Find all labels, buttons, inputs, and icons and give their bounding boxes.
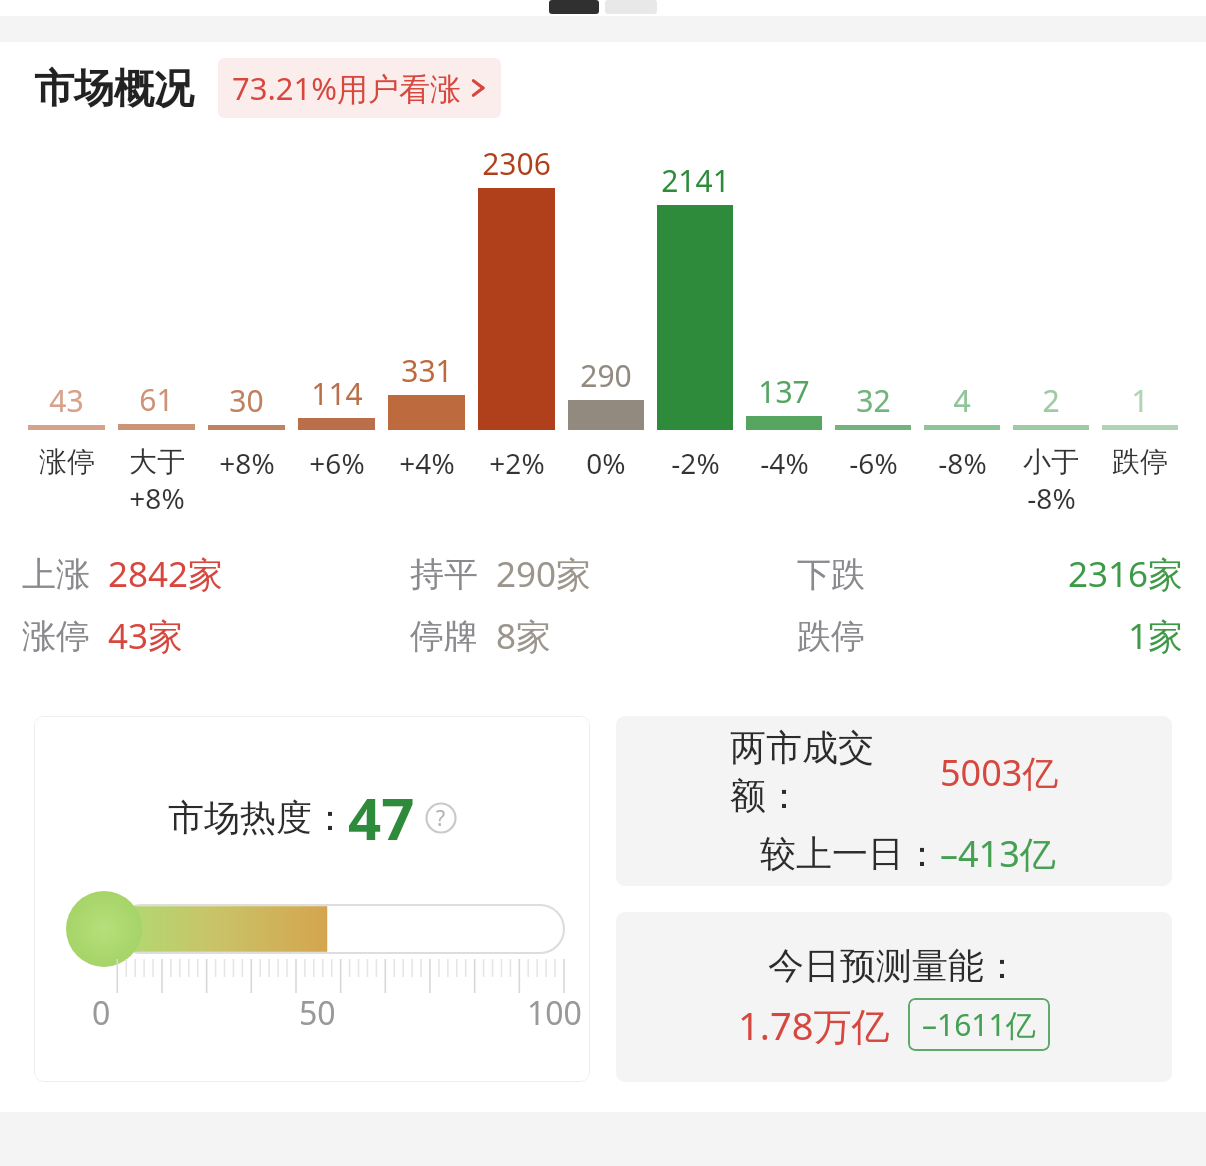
- staticText: 331: [401, 350, 453, 391]
- staticText: –1611亿: [922, 1004, 1036, 1045]
- staticText: 1.78万亿: [738, 999, 890, 1051]
- staticText: 下跌: [797, 553, 865, 596]
- staticText: -2%: [671, 444, 720, 482]
- button[interactable]: 帮助: [425, 802, 457, 834]
- staticText: 涨停: [39, 444, 95, 479]
- button[interactable]: 43: [28, 128, 105, 479]
- staticText: 0%: [586, 444, 626, 482]
- button[interactable]: 30: [208, 128, 285, 482]
- staticText: +8%: [219, 444, 275, 482]
- staticText: 停牌: [410, 615, 478, 658]
- button[interactable]: 114: [298, 128, 375, 482]
- staticText: –413亿: [940, 829, 1056, 878]
- staticText: 今日预测量能：: [768, 943, 1020, 988]
- button[interactable]: 2: [1013, 128, 1089, 517]
- staticText: 61: [139, 379, 174, 420]
- staticText: 上涨: [22, 553, 90, 596]
- staticText: -6%: [849, 444, 898, 482]
- staticText: 两市成交额：: [730, 725, 940, 819]
- staticText: 市场热度：: [168, 795, 348, 840]
- button[interactable]: 290: [568, 128, 644, 482]
- staticText: 47: [348, 778, 415, 857]
- staticText: 2: [1042, 380, 1060, 421]
- button[interactable]: 1: [1102, 128, 1178, 479]
- staticText: +8%: [129, 479, 185, 517]
- staticText: 290家: [496, 550, 592, 598]
- staticText: 持平: [410, 553, 478, 596]
- staticText: 290: [580, 355, 632, 396]
- staticText: +6%: [309, 444, 365, 482]
- button[interactable]: 61: [118, 128, 195, 517]
- staticText: 8家: [496, 612, 552, 660]
- staticText: 大于: [129, 444, 185, 479]
- button[interactable]: 市场热度：: [34, 716, 590, 1082]
- staticText: 0: [92, 991, 111, 1035]
- staticText: +4%: [399, 444, 455, 482]
- button[interactable]: [549, 0, 599, 14]
- staticText: +2%: [489, 444, 545, 482]
- staticText: 跌停: [1112, 444, 1168, 479]
- staticText: 30: [229, 380, 264, 421]
- button[interactable]: 今日预测量能：: [616, 912, 1172, 1082]
- button[interactable]: 137: [746, 128, 822, 482]
- staticText: 137: [758, 371, 810, 412]
- staticText: 43: [49, 380, 84, 421]
- staticText: 43家: [108, 612, 184, 660]
- staticText: -8%: [1027, 479, 1076, 517]
- staticText: 跌停: [797, 615, 865, 658]
- staticText: 4: [953, 380, 971, 421]
- button[interactable]: 2306: [478, 128, 555, 482]
- staticText: 2141: [661, 160, 730, 201]
- staticText: 2306: [482, 143, 551, 184]
- staticText: 50: [299, 991, 336, 1035]
- staticText: 100: [527, 991, 582, 1035]
- staticText: -8%: [938, 444, 987, 482]
- staticText: 114: [311, 373, 363, 414]
- staticText: 1: [1131, 380, 1149, 421]
- staticText: 较上一日：: [760, 831, 940, 876]
- button[interactable]: 2141: [657, 128, 733, 482]
- staticText: 5003亿: [940, 748, 1059, 797]
- staticText: 2842家: [108, 550, 224, 598]
- staticText: 市场概况: [34, 63, 194, 113]
- staticText: 小于: [1023, 444, 1079, 479]
- staticText: 涨停: [22, 615, 90, 658]
- button[interactable]: 32: [835, 128, 911, 482]
- button[interactable]: 73.21%用户看涨: [218, 58, 501, 118]
- button[interactable]: –1611亿: [908, 998, 1050, 1051]
- staticText: -4%: [760, 444, 809, 482]
- button[interactable]: 4: [924, 128, 1000, 482]
- staticText: 73.21%用户看涨: [232, 67, 461, 109]
- staticText: 1家: [1128, 612, 1184, 660]
- button[interactable]: 331: [388, 128, 465, 482]
- staticText: 2316家: [1068, 550, 1184, 598]
- staticText: 32: [856, 380, 891, 421]
- button[interactable]: 两市成交额：: [616, 716, 1172, 886]
- staticText: ?: [436, 804, 446, 833]
